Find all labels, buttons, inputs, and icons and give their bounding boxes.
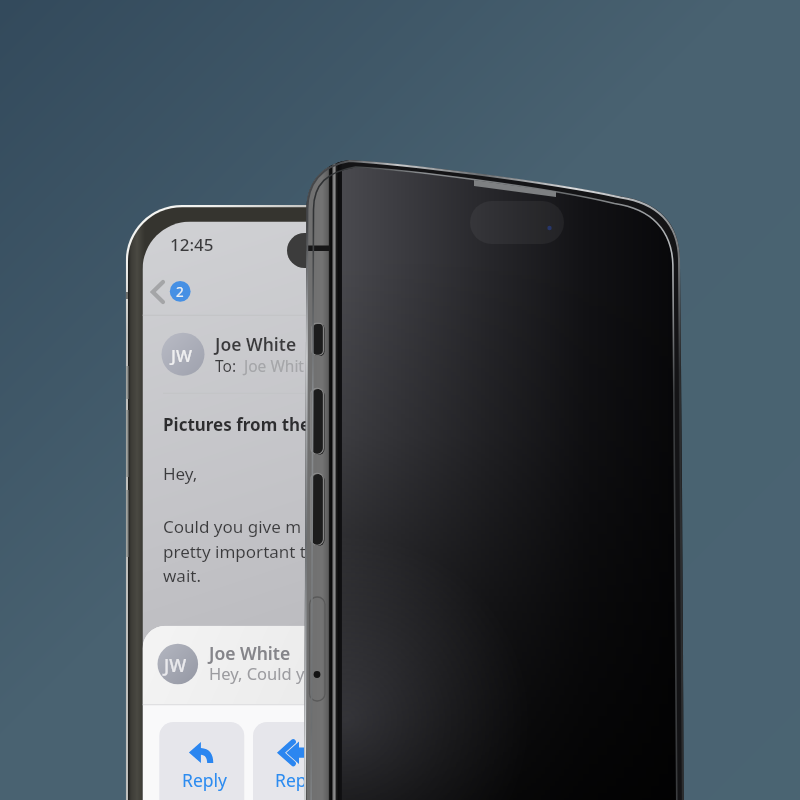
button[interactable]: Joe White, Hey, Could you... bbox=[145, 626, 345, 706]
staticText: Joe Whit bbox=[244, 355, 304, 376]
staticText: Joe White bbox=[209, 641, 291, 665]
staticText: Joe White bbox=[215, 332, 297, 356]
staticText: 2 bbox=[176, 283, 184, 301]
button[interactable]: Reply bbox=[159, 722, 245, 800]
staticText: Could you give m bbox=[163, 515, 302, 538]
staticText: JW bbox=[164, 653, 187, 678]
staticText: 12:45 bbox=[170, 233, 214, 256]
staticText: Hey, Could y bbox=[209, 662, 305, 684]
staticText: wait. bbox=[163, 564, 201, 587]
staticText: Pictures from the bbox=[163, 413, 311, 436]
button[interactable]: Back to Inbox, 2 unread bbox=[145, 272, 197, 312]
staticText: Hey, bbox=[163, 462, 198, 485]
staticText: Reply bbox=[182, 768, 227, 792]
staticText: pretty important t bbox=[163, 540, 307, 563]
staticText: JW bbox=[171, 344, 192, 367]
staticText: To: bbox=[215, 355, 237, 376]
button[interactable]: Reply All bbox=[253, 722, 339, 800]
button[interactable]: Message header, Joe White bbox=[145, 318, 345, 392]
staticText: Reply bbox=[275, 768, 320, 792]
